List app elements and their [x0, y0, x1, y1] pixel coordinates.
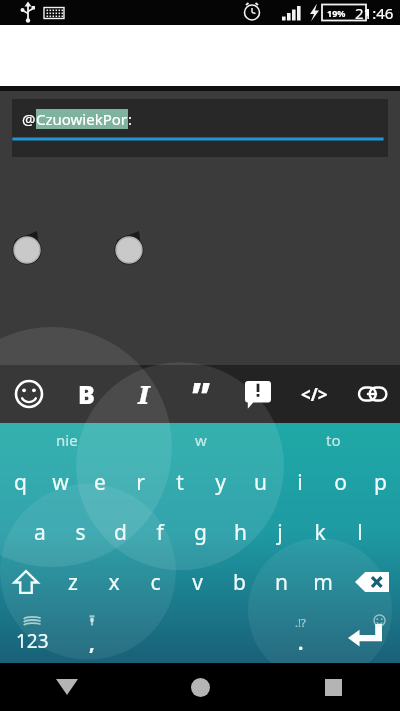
staticText: o — [334, 468, 347, 497]
staticText: 21:46 — [355, 3, 394, 23]
staticText: u — [254, 468, 267, 497]
staticText: .!? — [295, 615, 306, 630]
staticText: d — [114, 518, 127, 547]
button[interactable]: b — [218, 557, 260, 607]
button[interactable]: h — [220, 507, 260, 557]
button[interactable]: Emoji — [0, 365, 58, 423]
staticText: w — [195, 430, 207, 450]
button[interactable]: v — [176, 557, 218, 607]
button[interactable]: j — [260, 507, 300, 557]
staticText: h — [234, 518, 247, 547]
staticText: e — [94, 468, 106, 497]
button[interactable]: Period — [270, 607, 330, 663]
button[interactable]: Link — [343, 365, 400, 423]
staticText: to — [326, 430, 341, 450]
staticText: v — [192, 568, 203, 597]
button[interactable]: e — [80, 457, 120, 507]
button[interactable]: o — [320, 457, 360, 507]
button[interactable]: d — [100, 507, 140, 557]
button[interactable]: Quote — [172, 365, 229, 423]
button[interactable]: w — [134, 423, 267, 457]
button[interactable]: z — [52, 557, 93, 607]
button[interactable]: Code — [286, 365, 343, 423]
button[interactable]: p — [360, 457, 400, 507]
staticText: ” — [192, 370, 210, 419]
staticText: k — [314, 518, 326, 547]
button[interactable]: Shift — [0, 557, 52, 607]
staticText: CzuowiekPor — [36, 109, 128, 129]
staticText: g — [194, 518, 207, 547]
staticText: j — [277, 518, 283, 547]
button[interactable]: Home — [134, 663, 267, 711]
button[interactable]: y — [200, 457, 240, 507]
staticText: </> — [301, 383, 328, 406]
button[interactable]: m — [302, 557, 344, 607]
button[interactable]: Backspace — [344, 557, 400, 607]
button[interactable]: a — [20, 507, 60, 557]
button[interactable]: Space — [120, 607, 270, 663]
staticText: @ — [22, 109, 36, 129]
button[interactable]: f — [140, 507, 180, 557]
button[interactable]: t — [160, 457, 200, 507]
button[interactable]: Recents — [267, 663, 400, 711]
staticText: 19% — [327, 7, 346, 19]
button[interactable]: Spoiler — [229, 365, 286, 423]
button[interactable]: q — [0, 457, 40, 507]
staticText: 123 — [16, 628, 49, 654]
button[interactable]: 123 — [0, 607, 64, 663]
staticText: l — [357, 518, 363, 547]
staticText: m — [313, 568, 333, 597]
button[interactable]: c — [134, 557, 176, 607]
button[interactable]: Bold — [58, 365, 115, 423]
staticText: , — [89, 629, 95, 656]
button[interactable]: k — [300, 507, 340, 557]
button[interactable]: Back — [0, 663, 134, 711]
staticText: : — [128, 109, 133, 129]
button[interactable]: Italic — [115, 365, 172, 423]
staticText: I — [138, 377, 149, 411]
staticText: i — [297, 468, 303, 497]
staticText: x — [108, 568, 120, 597]
button[interactable]: to — [267, 423, 400, 457]
staticText: p — [374, 468, 387, 497]
staticText: w — [52, 468, 69, 497]
button[interactable]: Comma — [64, 607, 120, 663]
button[interactable]: nie — [0, 423, 134, 457]
staticText: y — [215, 468, 226, 497]
staticText: b — [233, 568, 246, 597]
staticText: . — [298, 630, 304, 656]
button[interactable]: l — [340, 507, 380, 557]
staticText: t — [176, 468, 184, 497]
button[interactable]: g — [180, 507, 220, 557]
button[interactable]: w — [40, 457, 80, 507]
staticText: n — [275, 568, 288, 597]
staticText: f — [156, 518, 164, 547]
staticText: r — [136, 468, 145, 497]
button[interactable]: Enter — [330, 607, 400, 663]
button[interactable]: x — [93, 557, 134, 607]
staticText: q — [14, 468, 27, 497]
staticText: nie — [56, 430, 78, 450]
button[interactable]: u — [240, 457, 280, 507]
button[interactable]: @ — [12, 99, 388, 157]
button[interactable]: i — [280, 457, 320, 507]
button[interactable]: s — [60, 507, 100, 557]
staticText: s — [75, 518, 86, 547]
staticText: c — [150, 568, 161, 597]
staticText: a — [34, 518, 46, 547]
button[interactable]: r — [120, 457, 160, 507]
staticText: B — [78, 377, 95, 411]
staticText: z — [68, 568, 78, 597]
button[interactable]: n — [260, 557, 302, 607]
